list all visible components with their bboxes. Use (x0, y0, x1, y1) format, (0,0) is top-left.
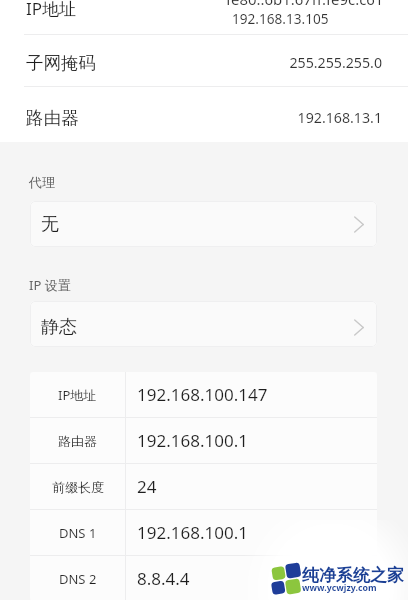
button[interactable]: DNS 1 (30, 510, 377, 555)
staticText: 192.168.100.1 (137, 521, 248, 544)
staticText: 路由器 (58, 433, 97, 449)
staticText: www.ycwjzy.com (302, 582, 377, 594)
staticText: IP地址 (58, 386, 97, 404)
staticText: 192.168.100.147 (137, 383, 268, 406)
staticText: 纯净系统之家 (302, 565, 404, 586)
staticText: 前缀长度 (52, 479, 104, 495)
button[interactable]: 路由器 (0, 90, 408, 142)
button[interactable]: 无 (30, 201, 377, 247)
staticText: 8.8.4.4 (137, 567, 190, 590)
staticText: 子网掩码 (26, 52, 96, 74)
button[interactable]: 子网掩码 (0, 37, 408, 88)
button[interactable]: DNS 2 (30, 556, 377, 600)
button[interactable]: 静态 (30, 301, 377, 347)
button[interactable]: 前缀长度 (30, 464, 377, 509)
button[interactable]: IP地址 (30, 372, 377, 417)
staticText: DNS 1 (59, 524, 97, 542)
staticText: fe80::6b1:67ff:fe9c:c61 (226, 0, 384, 9)
staticText: 无 (41, 213, 59, 236)
other: Open (351, 319, 368, 336)
other: Open (351, 216, 368, 233)
staticText: 192.168.13.1 (297, 108, 382, 127)
button[interactable]: IP地址 (0, 0, 408, 34)
staticText: DNS 2 (59, 570, 97, 588)
staticText: 255.255.255.0 (289, 53, 382, 72)
staticText: 静态 (41, 316, 77, 339)
staticText: 路由器 (26, 107, 79, 129)
staticText: 192.168.13.105 (232, 9, 329, 28)
button[interactable]: 路由器 (30, 418, 377, 463)
staticText: 24 (137, 475, 157, 498)
staticText: 192.168.100.1 (137, 429, 248, 452)
staticText: IP 设置 (29, 276, 71, 294)
staticText: IP地址 (26, 0, 77, 20)
staticText: 代理 (29, 174, 55, 190)
